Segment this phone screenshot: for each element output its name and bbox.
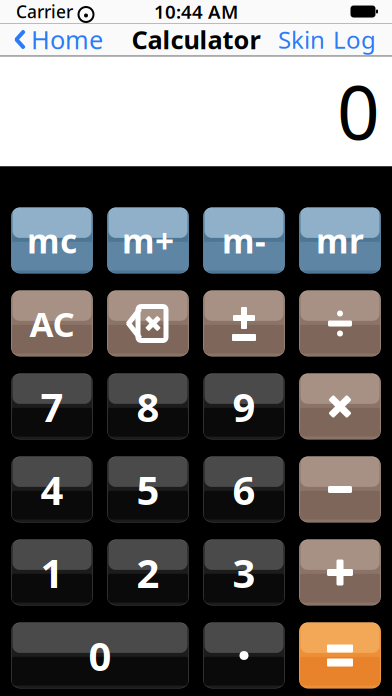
staticText: Calculator	[131, 23, 260, 56]
staticText: AC	[29, 300, 74, 346]
staticText: 0	[88, 629, 111, 682]
button[interactable]: m+	[107, 207, 189, 273]
button[interactable]: 0	[11, 622, 189, 688]
button[interactable]: Skin	[274, 18, 329, 61]
staticText: mr	[316, 218, 364, 263]
button[interactable]: 6	[203, 456, 285, 522]
button[interactable]: 7	[11, 373, 93, 439]
button[interactable]: 5	[107, 456, 189, 522]
button[interactable]	[299, 290, 381, 356]
button[interactable]	[299, 539, 381, 605]
staticText: m-	[222, 218, 266, 263]
staticText: 6	[232, 463, 255, 516]
staticText: 2	[136, 546, 159, 599]
button[interactable]: 2	[107, 539, 189, 605]
staticText: 3	[232, 546, 255, 599]
button[interactable]	[107, 290, 189, 356]
button[interactable]: mr	[299, 207, 381, 273]
button[interactable]	[299, 622, 381, 688]
button[interactable]: 4	[11, 456, 93, 522]
staticText: 8	[136, 380, 159, 433]
button[interactable]	[299, 373, 381, 439]
button[interactable]: Home	[0, 17, 103, 62]
staticText: 10:44 AM	[154, 0, 238, 24]
button[interactable]: AC	[11, 290, 93, 356]
staticText: 1	[40, 546, 63, 599]
button[interactable]: 9	[203, 373, 285, 439]
button[interactable]: m-	[203, 207, 285, 273]
button[interactable]: 1	[11, 539, 93, 605]
button[interactable]	[299, 456, 381, 522]
staticText: Home	[31, 23, 103, 56]
button[interactable]: Log	[329, 18, 380, 61]
button[interactable]: 8	[107, 373, 189, 439]
button[interactable]	[203, 290, 285, 356]
staticText: 4	[40, 463, 63, 516]
staticText: m+	[122, 218, 174, 263]
staticText: 5	[136, 463, 159, 516]
staticText: mc	[27, 218, 77, 263]
staticText: Skin	[278, 24, 325, 55]
staticText: Log	[333, 24, 376, 55]
button[interactable]	[203, 622, 285, 688]
button[interactable]: mc	[11, 207, 93, 273]
staticText: Carrier	[16, 0, 73, 23]
staticText: 7	[40, 380, 63, 433]
button[interactable]: 3	[203, 539, 285, 605]
staticText: 0	[337, 61, 380, 160]
staticText: 9	[232, 380, 255, 433]
